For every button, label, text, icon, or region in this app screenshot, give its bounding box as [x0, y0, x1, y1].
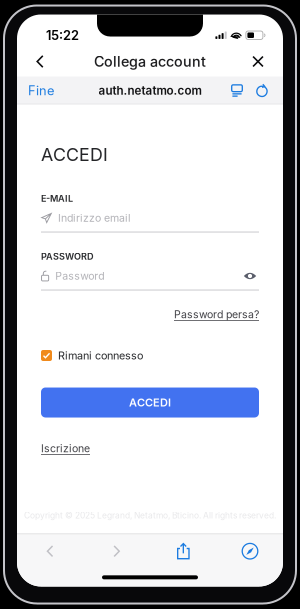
- staticText: Password persa?: [174, 308, 259, 321]
- button[interactable]: Rimani connesso: [41, 348, 259, 362]
- staticText: PASSWORD: [41, 251, 94, 262]
- button[interactable]: Iscrizione: [41, 441, 90, 455]
- staticText: ACCEDI: [41, 144, 108, 165]
- button[interactable]: Share: [160, 534, 206, 568]
- staticText: auth.netatmo.com: [98, 83, 201, 97]
- staticText: Collega account: [94, 53, 206, 70]
- staticText: ACCEDI: [129, 396, 171, 409]
- button[interactable]: Forward: [94, 534, 140, 568]
- staticText: E-MAIL: [41, 193, 73, 204]
- staticText: Iscrizione: [41, 442, 90, 455]
- staticText: Copyright © 2025 Legrand, Netatmo, Btici…: [24, 510, 276, 521]
- button[interactable]: ACCEDI: [41, 387, 259, 417]
- button[interactable]: Password persa?: [174, 307, 259, 321]
- button[interactable]: Fine: [21, 76, 61, 104]
- button[interactable]: Back: [27, 534, 73, 568]
- button[interactable]: Reload: [249, 76, 275, 104]
- button[interactable]: Back: [22, 46, 58, 76]
- staticText: 15:22: [46, 27, 79, 43]
- staticText: Indirizzo email: [58, 212, 131, 224]
- button[interactable]: Show password: [241, 268, 259, 283]
- button[interactable]: Reader view: [225, 76, 249, 104]
- staticText: Fine: [28, 83, 54, 98]
- staticText: Password: [55, 270, 104, 282]
- button[interactable]: Close: [240, 46, 276, 76]
- button[interactable]: Open in Safari: [227, 534, 273, 568]
- staticText: Rimani connesso: [58, 349, 143, 362]
